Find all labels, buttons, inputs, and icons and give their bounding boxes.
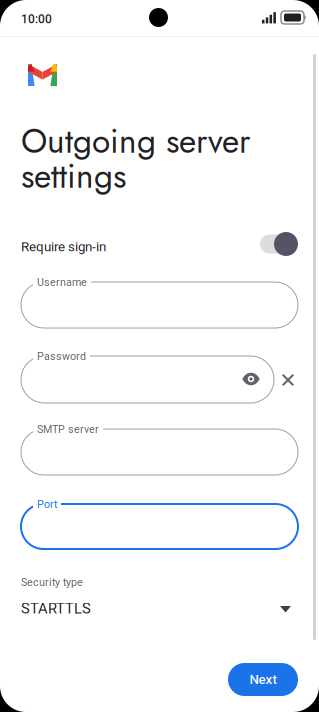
staticText: Password: [37, 350, 86, 362]
button[interactable]: Username: [21, 282, 298, 328]
staticText: SMTP server: [37, 423, 99, 435]
button[interactable]: Require sign-in: [260, 232, 298, 256]
button[interactable]: Port: [21, 504, 298, 549]
staticText: STARTTLS: [21, 600, 91, 617]
staticText: settings: [21, 152, 126, 200]
button[interactable]: SMTP server: [21, 429, 298, 475]
staticText: Next: [249, 672, 276, 687]
button[interactable]: Clear password: [282, 374, 294, 386]
staticText: Require sign-in: [21, 239, 106, 255]
staticText: Security type: [21, 576, 83, 588]
button[interactable]: Next: [228, 663, 298, 696]
button[interactable]: STARTTLS: [21, 597, 298, 621]
button[interactable]: Password: [21, 356, 274, 403]
staticText: Outgoing server: [21, 117, 250, 165]
staticText: Username: [37, 276, 87, 288]
staticText: Port: [37, 498, 57, 510]
staticText: 10:00: [21, 12, 52, 26]
